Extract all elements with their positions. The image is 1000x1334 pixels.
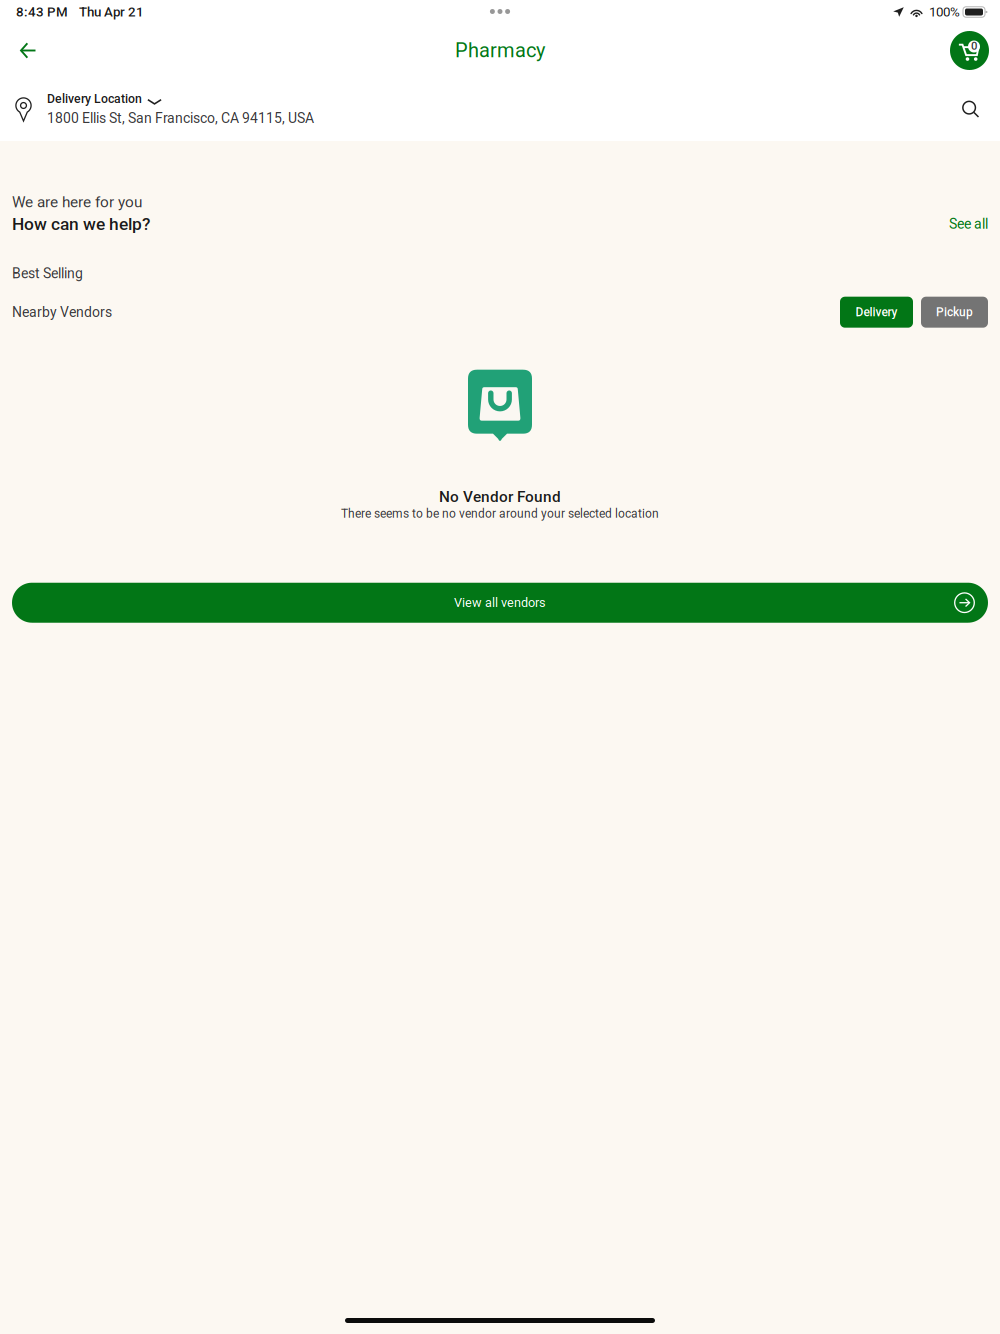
staticText: Nearby Vendors (12, 304, 112, 320)
button[interactable]: Pickup (921, 297, 988, 328)
button[interactable]: Cart (950, 31, 989, 70)
button[interactable]: View all vendors (12, 583, 988, 623)
staticText: 0 (971, 39, 977, 53)
staticText: Delivery (855, 305, 897, 319)
staticText: There seems to be no vendor around your … (341, 507, 659, 521)
staticText: View all vendors (454, 595, 546, 610)
staticText: Pickup (936, 305, 973, 319)
button[interactable]: Search (948, 87, 1000, 130)
staticText: Thu Apr 21 (79, 4, 144, 20)
button[interactable]: Delivery Location (0, 84, 314, 134)
staticText: 8:43 PM (16, 4, 68, 20)
staticText: Pharmacy (455, 39, 545, 62)
staticText: We are here for you (12, 193, 142, 211)
button[interactable]: Delivery (840, 297, 913, 328)
staticText: See all (949, 216, 988, 232)
staticText: Best Selling (12, 265, 83, 282)
staticText: How can we help? (12, 214, 150, 234)
staticText: Delivery Location (47, 92, 142, 106)
button[interactable]: See all (949, 216, 988, 234)
button[interactable]: Back (0, 31, 50, 69)
staticText: 1800 Ellis St, San Francisco, CA 94115, … (47, 110, 314, 126)
staticText: 100% (929, 4, 960, 20)
staticText: No Vendor Found (439, 488, 561, 506)
